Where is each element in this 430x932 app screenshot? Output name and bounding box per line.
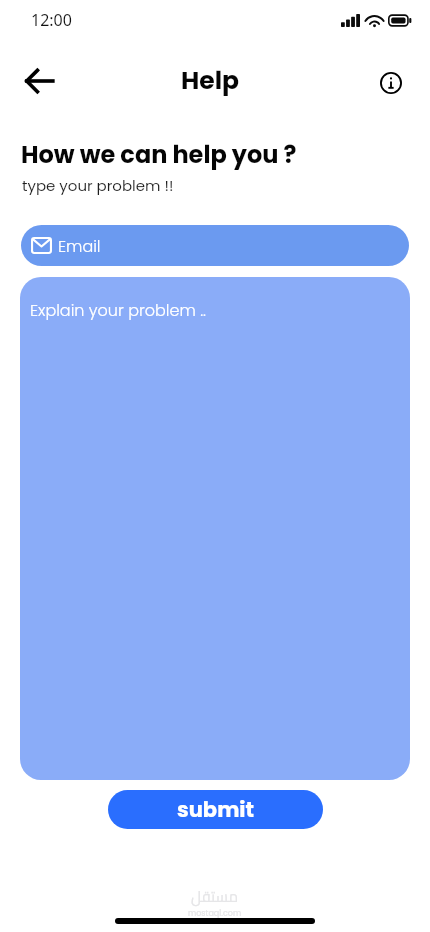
button[interactable]: Explain your problem .. — [20, 277, 410, 780]
button[interactable]: Info — [373, 65, 409, 101]
staticText: Help — [181, 63, 240, 98]
staticText: type your problem !! — [22, 175, 174, 196]
button[interactable]: Back — [14, 56, 64, 106]
staticText: submit — [177, 795, 255, 824]
staticText: Email — [58, 235, 101, 257]
staticText: How we can help you ? — [21, 138, 297, 172]
staticText: mostaql.com — [188, 908, 242, 919]
staticText: مستقل — [191, 882, 239, 910]
button[interactable]: Email — [21, 225, 409, 266]
staticText: 12:00 — [31, 9, 72, 31]
button[interactable]: submit — [108, 790, 323, 829]
staticText: Explain your problem .. — [30, 299, 206, 321]
